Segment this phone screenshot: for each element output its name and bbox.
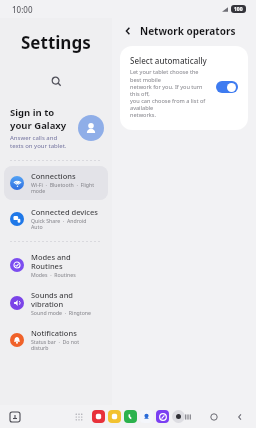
button[interactable]: Select automatically toggle xyxy=(216,81,238,93)
button[interactable]: Recents tray xyxy=(8,410,22,424)
button[interactable]: Modes and Routines xyxy=(4,247,108,283)
button[interactable]: Select automatically xyxy=(120,46,248,130)
button[interactable]: Search xyxy=(0,66,112,96)
button[interactable]: App xyxy=(156,410,169,423)
staticText: Let your tablet choose the best mobile n… xyxy=(130,68,208,119)
button[interactable]: App xyxy=(108,410,121,423)
staticText: Quick Share · Android Auto xyxy=(31,217,87,231)
staticText: Connected devices xyxy=(31,207,98,217)
staticText: Settings xyxy=(21,31,91,54)
staticText: Select automatically xyxy=(130,55,207,66)
staticText: Status bar · Do not disturb xyxy=(31,338,80,352)
staticText: Sound mode · Ringtone xyxy=(31,309,91,316)
button[interactable]: Back xyxy=(234,411,246,423)
button[interactable]: Connected devices xyxy=(4,202,108,236)
staticText: texts on your tablet. xyxy=(10,142,67,150)
button[interactable]: Home xyxy=(208,411,220,423)
button[interactable]: Connections xyxy=(4,166,108,200)
button[interactable]: App xyxy=(92,410,105,423)
staticText: your Galaxy xyxy=(10,119,67,132)
staticText: 10:00 xyxy=(12,4,33,15)
button[interactable]: Recent apps xyxy=(182,411,194,423)
staticText: Modes · Routines xyxy=(31,271,76,278)
staticText: 100 xyxy=(234,6,243,13)
staticText: Notifications xyxy=(31,328,77,338)
button[interactable]: Sign in to xyxy=(0,102,112,156)
staticText: Connections xyxy=(31,171,76,181)
button[interactable]: App xyxy=(124,410,137,423)
button[interactable]: Notifications xyxy=(4,323,108,357)
staticText: Wi-Fi · Bluetooth · Flight mode xyxy=(31,181,95,195)
button[interactable]: Sounds and vibration xyxy=(4,285,108,321)
staticText: Modes and Routines xyxy=(31,252,71,271)
button[interactable]: App xyxy=(140,410,153,423)
button[interactable]: All apps xyxy=(72,410,85,423)
staticText: Answer calls and xyxy=(10,134,58,142)
staticText: Sounds and vibration xyxy=(31,290,73,309)
button[interactable]: App xyxy=(172,410,185,423)
staticText: Network operators xyxy=(140,24,236,38)
staticText: Sign in to xyxy=(10,106,55,119)
button[interactable]: Back xyxy=(118,21,138,41)
